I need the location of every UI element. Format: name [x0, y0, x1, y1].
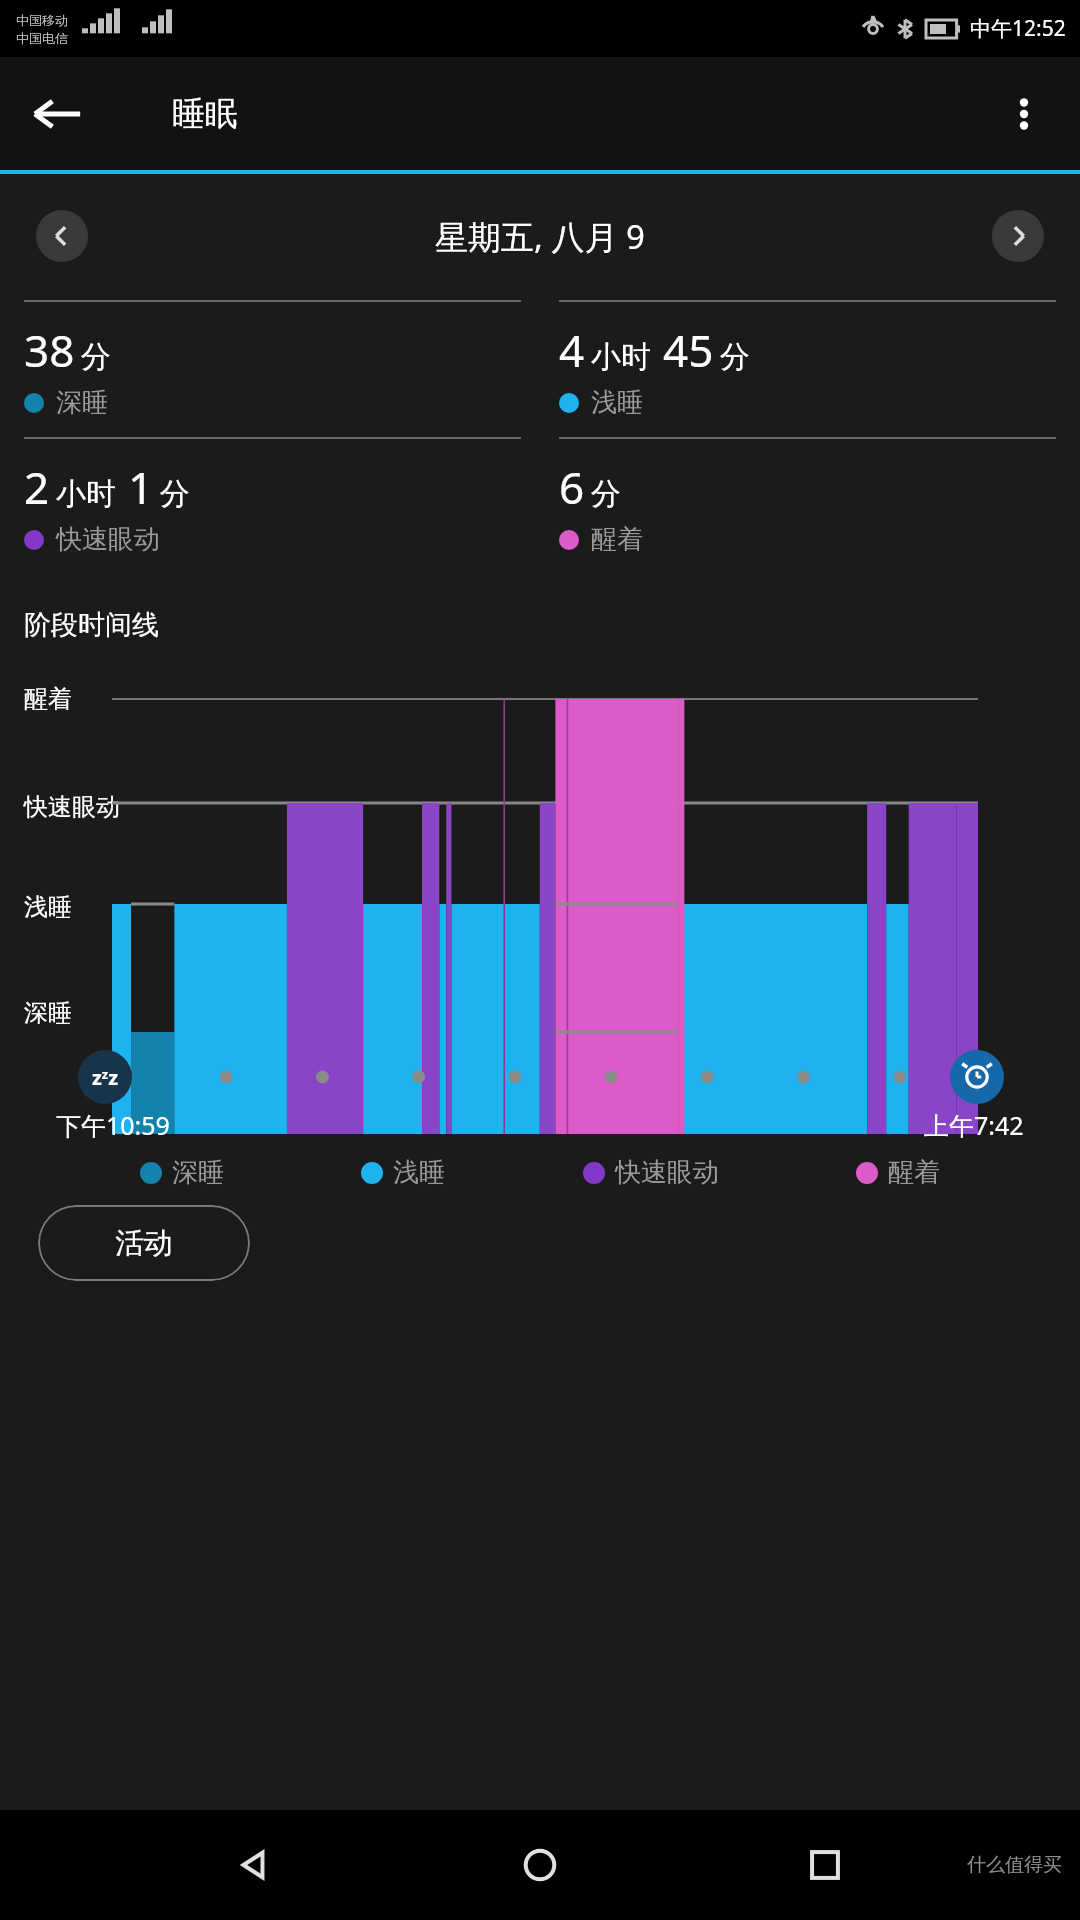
button[interactable]: Back [28, 85, 86, 143]
button[interactable]: Wake time [950, 1050, 1004, 1104]
staticText: 小时 [56, 475, 116, 513]
staticText: 浅睡 [591, 386, 643, 419]
staticText: 2 [24, 457, 50, 517]
button[interactable]: 活动 [38, 1205, 250, 1281]
staticText: 上午7:42 [924, 1108, 1024, 1142]
button[interactable]: 快速眼动 [583, 1156, 719, 1189]
staticText: 什么值得买 [967, 1853, 1062, 1877]
staticText: 浅睡 [24, 892, 72, 922]
staticText: 分 [160, 475, 190, 513]
staticText: 活动 [115, 1225, 173, 1262]
staticText: 4 [559, 320, 585, 380]
staticText: 浅睡 [393, 1156, 445, 1189]
button[interactable]: 醒着 [856, 1156, 940, 1189]
button[interactable]: Next day [992, 210, 1044, 262]
staticText: zᶻz [92, 1064, 119, 1091]
staticText: 45 [663, 320, 714, 380]
staticText: 分 [720, 338, 750, 376]
staticText: 下午10:59 [56, 1108, 170, 1142]
staticText: 深睡 [172, 1156, 224, 1189]
staticText: 6 [559, 457, 585, 517]
button[interactable]: More options [998, 88, 1050, 140]
staticText: 中国移动 [16, 12, 68, 28]
staticText: 中国电信 [16, 30, 68, 46]
button[interactable]: Back [225, 1835, 285, 1895]
staticText: 快速眼动 [56, 523, 160, 556]
button[interactable]: 浅睡 [361, 1156, 445, 1189]
staticText: 醒着 [888, 1156, 940, 1189]
button[interactable]: 深睡 [140, 1156, 224, 1189]
staticText: 醒着 [591, 523, 643, 556]
button[interactable]: Previous day [36, 210, 88, 262]
staticText: 分 [81, 338, 111, 376]
staticText: 分 [591, 475, 621, 513]
staticText: 睡眠 [172, 93, 238, 135]
button[interactable]: Home [510, 1835, 570, 1895]
staticText: 38 [24, 320, 75, 380]
staticText: 快速眼动 [615, 1156, 719, 1189]
staticText: 快速眼动 [24, 792, 120, 822]
staticText: 深睡 [24, 998, 72, 1028]
staticText: 深睡 [56, 386, 108, 419]
staticText: 小时 [591, 338, 651, 376]
button[interactable]: Bedtime [78, 1050, 132, 1104]
staticText: 醒着 [24, 684, 72, 714]
staticText: 星期五, 八月 9 [435, 214, 645, 259]
staticText: 阶段时间线 [24, 608, 159, 642]
staticText: 1 [128, 457, 154, 517]
button[interactable]: Recents [795, 1835, 855, 1895]
staticText: 中午12:52 [970, 14, 1066, 43]
